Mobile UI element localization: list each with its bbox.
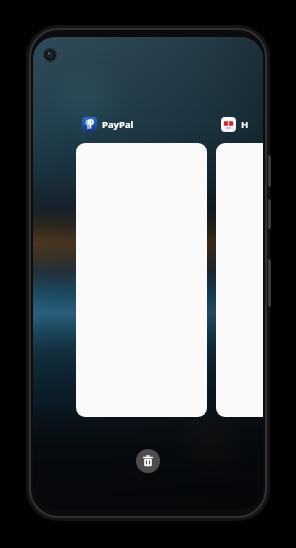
button[interactable]: Volume down <box>268 199 271 229</box>
button[interactable]: PayPal recent task <box>76 143 207 417</box>
staticText: H <box>241 118 249 131</box>
staticText: PayPal <box>102 118 134 131</box>
button[interactable]: H <box>221 115 249 133</box>
button[interactable]: Second recent task <box>216 143 263 417</box>
button[interactable]: Clear all recent apps <box>136 449 160 473</box>
button[interactable]: PayPal <box>81 115 135 133</box>
button[interactable]: Volume up <box>268 155 271 187</box>
button[interactable]: Power <box>268 259 271 307</box>
